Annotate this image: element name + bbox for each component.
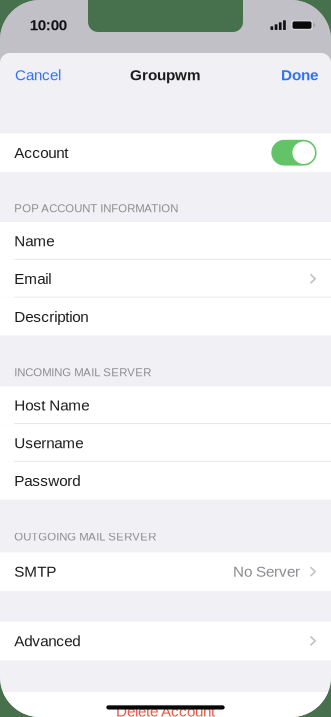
button[interactable]: Done (269, 53, 331, 97)
button[interactable]: Account (0, 133, 331, 172)
staticText: Password (14, 472, 80, 489)
staticText: Groupwm (130, 66, 201, 83)
button[interactable]: SMTP (0, 552, 331, 591)
button[interactable]: Name (0, 222, 331, 260)
staticText: No Server (233, 563, 300, 580)
button[interactable]: Username (0, 424, 331, 462)
staticText: SMTP (14, 563, 56, 580)
button[interactable]: Password (0, 462, 331, 500)
staticText: Host Name (14, 397, 89, 414)
staticText: Delete Account (116, 703, 215, 717)
button[interactable]: Host Name (0, 386, 331, 424)
staticText: INCOMING MAIL SERVER (14, 366, 151, 379)
button[interactable]: Cancel (0, 53, 73, 97)
staticText: Username (14, 434, 83, 451)
staticText: OUTGOING MAIL SERVER (14, 530, 156, 543)
staticText: Account (14, 144, 68, 161)
staticText: Cancel (15, 67, 61, 83)
staticText: Email (14, 270, 51, 287)
staticText: Done (281, 66, 318, 83)
button[interactable]: Delete Account (0, 692, 331, 717)
button[interactable]: Description (0, 298, 331, 336)
staticText: POP ACCOUNT INFORMATION (14, 202, 178, 215)
button[interactable]: Advanced (0, 622, 331, 660)
button[interactable]: Email (0, 260, 331, 298)
staticText: Advanced (14, 632, 80, 649)
staticText: Description (14, 308, 88, 325)
staticText: 10:00 (30, 17, 67, 34)
staticText: Name (14, 232, 54, 249)
